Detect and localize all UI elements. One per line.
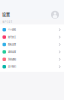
button[interactable]: 账号安全	[0, 33, 64, 41]
staticText: 通用设置	[8, 50, 16, 53]
button[interactable]: 关于我们	[0, 63, 64, 70]
staticText: 关于我们	[8, 65, 16, 68]
button[interactable]: 消息通知	[0, 56, 64, 63]
staticText: 账号安全	[8, 36, 16, 39]
button[interactable]: 通用设置	[0, 48, 64, 56]
staticText: 设置	[2, 12, 10, 18]
staticText: 消息通知	[8, 58, 16, 61]
staticText: 账户与安全	[3, 21, 13, 23]
button[interactable]: Profile	[51, 11, 59, 19]
staticText: 个人资料	[8, 28, 16, 31]
button[interactable]: 个人资料	[0, 26, 64, 33]
button[interactable]: 隐私设置	[0, 41, 64, 48]
staticText: 隐私设置	[8, 43, 16, 46]
